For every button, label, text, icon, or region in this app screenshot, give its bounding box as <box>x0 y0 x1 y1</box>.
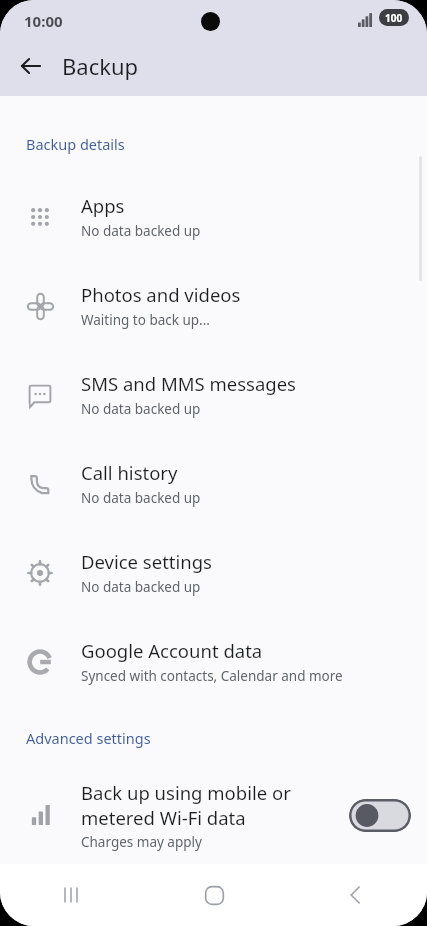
staticText: 100 <box>385 11 403 25</box>
staticText: Back up using mobile or <box>81 780 291 805</box>
staticText: SMS and MMS messages <box>81 371 296 396</box>
staticText: Synced with contacts, Calendar and more <box>81 667 343 685</box>
staticText: Charges may apply <box>81 833 202 851</box>
staticText: Call history <box>81 460 178 485</box>
staticText: Waiting to back up... <box>81 311 210 329</box>
button[interactable]: Back up using mobile or <box>0 766 427 864</box>
staticText: Photos and videos <box>81 282 241 307</box>
staticText: Advanced settings <box>26 728 151 748</box>
button[interactable]: Back up using mobile or metered Wi-Fi da… <box>349 799 411 832</box>
button[interactable]: Recent apps <box>37 864 105 926</box>
button[interactable]: Back <box>10 45 52 87</box>
staticText: No data backed up <box>81 222 201 240</box>
staticText: Device settings <box>81 549 212 574</box>
staticText: Apps <box>81 193 125 218</box>
staticText: Google Account data <box>81 638 263 663</box>
staticText: 10:00 <box>24 11 63 31</box>
button[interactable]: Back <box>322 864 390 926</box>
button[interactable]: Home <box>180 864 248 926</box>
button[interactable]: Apps <box>0 172 427 261</box>
button[interactable]: Device settings <box>0 528 427 617</box>
staticText: No data backed up <box>81 489 201 507</box>
staticText: No data backed up <box>81 400 201 418</box>
button[interactable]: Photos and videos <box>0 261 427 350</box>
staticText: No data backed up <box>81 578 201 596</box>
staticText: Backup <box>62 51 139 81</box>
staticText: Backup details <box>26 134 125 154</box>
button[interactable]: Google Account data <box>0 617 427 706</box>
staticText: metered Wi-Fi data <box>81 805 246 830</box>
button[interactable]: SMS and MMS messages <box>0 350 427 439</box>
button[interactable]: Call history <box>0 439 427 528</box>
